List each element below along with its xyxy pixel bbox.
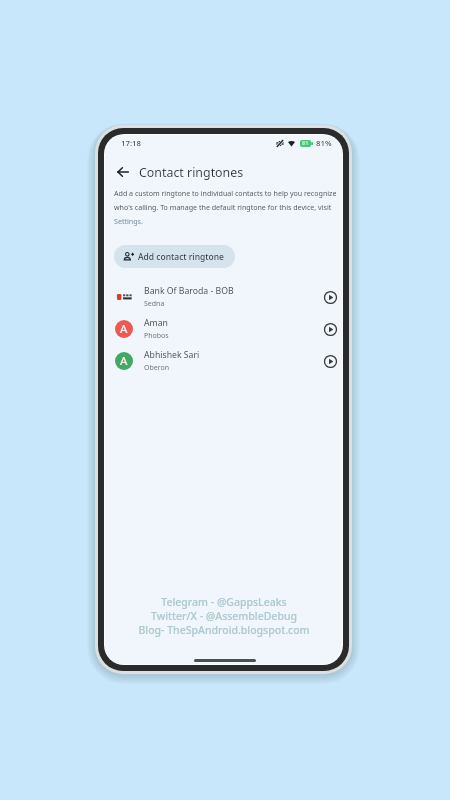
staticText: 81% (316, 138, 332, 149)
staticText: Telegram - @GappsLeaks (161, 595, 287, 609)
button[interactable]: A (106, 313, 342, 345)
staticText: Add contact ringtone (138, 251, 224, 263)
button[interactable]: Play ringtone (320, 287, 340, 307)
staticText: Sedna (144, 299, 165, 309)
staticText: Bank Of Baroda - BOB (144, 285, 234, 297)
staticText: 81 (302, 139, 309, 147)
staticText: Contact ringtones (139, 164, 244, 181)
staticText: Aman (144, 317, 168, 329)
staticText: Abhishek Sari (144, 349, 200, 361)
staticText: Add a custom ringtone to individual cont… (114, 188, 340, 226)
staticText: 17:18 (121, 138, 141, 149)
staticText: A (120, 321, 128, 337)
staticText: Blog- TheSpAndroid.blogspot.com (138, 623, 310, 637)
staticText: Oberon (144, 363, 170, 373)
button[interactable]: Play ringtone (320, 351, 340, 371)
staticText: Twitter/X - @AssembleDebug (151, 609, 297, 623)
button[interactable]: Play ringtone (320, 319, 340, 339)
button[interactable]: Back (111, 160, 135, 184)
button[interactable]: Bank Of Baroda - BOB (106, 281, 342, 313)
button[interactable]: A (106, 345, 342, 377)
staticText: Phobos (144, 331, 169, 341)
staticText: A (120, 353, 128, 369)
button[interactable]: Add contact ringtone (114, 245, 235, 268)
